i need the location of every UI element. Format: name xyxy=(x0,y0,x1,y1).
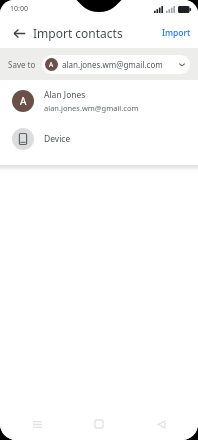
button[interactable]: A xyxy=(0,80,198,121)
staticText: alan.jones.wm@gmail.com xyxy=(44,103,139,113)
button[interactable]: Back xyxy=(6,20,32,46)
staticText: Alan Jones xyxy=(44,89,86,101)
button[interactable]: Home xyxy=(88,413,110,435)
button[interactable]: Recent apps xyxy=(26,413,48,435)
staticText: Device xyxy=(44,133,71,145)
button[interactable]: Device xyxy=(0,121,198,157)
staticText: Import xyxy=(162,27,191,39)
staticText: alan.jones.wm@gmail.com xyxy=(62,59,176,70)
button[interactable]: Back xyxy=(150,413,172,435)
button[interactable]: A xyxy=(42,55,190,74)
staticText: Save to xyxy=(8,59,36,70)
staticText: 10:00 xyxy=(10,4,28,14)
button[interactable]: Import xyxy=(155,23,198,43)
staticText: A xyxy=(20,94,27,108)
staticText: Import contacts xyxy=(33,25,123,41)
staticText: A xyxy=(49,60,54,69)
